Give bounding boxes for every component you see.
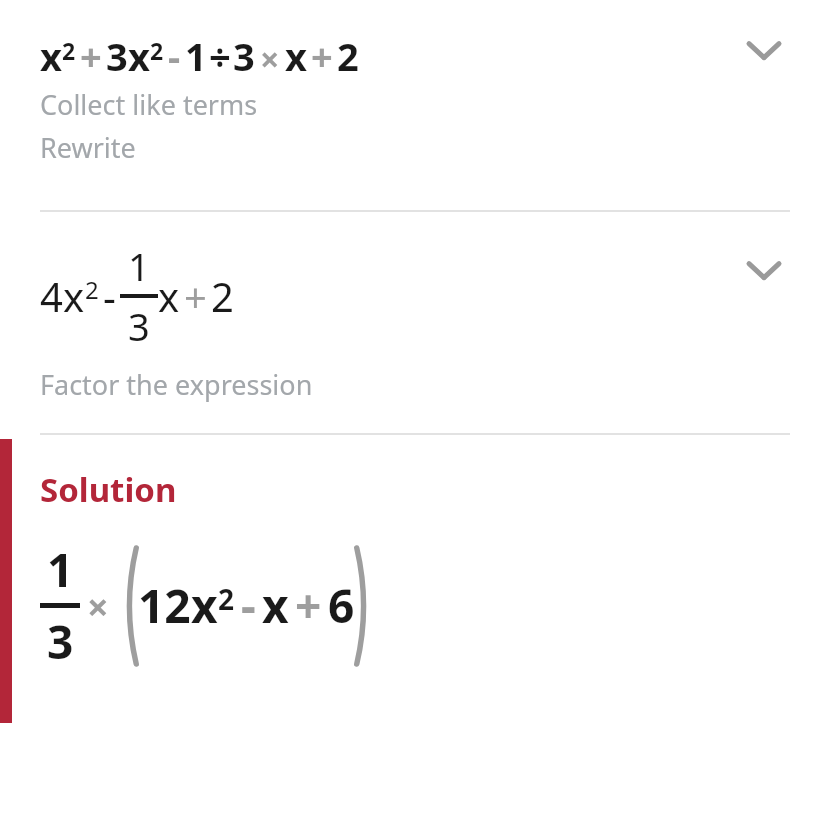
- staticText: x: [40, 30, 62, 82]
- staticText: Factor the expression: [40, 366, 313, 403]
- staticText: 4: [40, 269, 63, 323]
- staticText: 3: [106, 30, 128, 82]
- staticText: 2: [337, 30, 359, 82]
- staticText: -: [168, 30, 181, 82]
- staticText: x: [63, 269, 85, 323]
- staticText: +: [80, 30, 102, 82]
- button[interactable]: x: [0, 0, 828, 166]
- staticText: 1: [47, 538, 74, 601]
- staticText: 2: [85, 273, 99, 306]
- staticText: 1: [185, 30, 207, 82]
- staticText: 2: [218, 580, 235, 618]
- staticText: 3: [233, 30, 255, 82]
- button[interactable]: Expand: [736, 22, 792, 78]
- staticText: 3: [47, 610, 74, 673]
- staticText: 12: [138, 574, 191, 637]
- staticText: x: [285, 30, 307, 82]
- button[interactable]: Expand: [736, 242, 792, 298]
- staticText: ×: [87, 580, 109, 632]
- staticText: +: [295, 574, 322, 637]
- staticText: 2: [62, 35, 76, 66]
- staticText: x: [158, 269, 180, 323]
- staticText: +: [184, 269, 207, 323]
- staticText: x: [128, 30, 150, 82]
- staticText: ÷: [209, 30, 231, 82]
- staticText: 1: [128, 240, 150, 292]
- staticText: -: [103, 269, 116, 323]
- staticText: -: [241, 574, 256, 637]
- staticText: +: [311, 30, 333, 82]
- staticText: x: [262, 574, 289, 637]
- staticText: Solution: [40, 467, 177, 512]
- staticText: x: [191, 574, 218, 637]
- staticText: 3: [128, 300, 150, 352]
- staticText: Collect like terms: [40, 86, 258, 123]
- staticText: 2: [150, 35, 164, 66]
- staticText: Rewrite: [40, 129, 136, 166]
- staticText: 2: [211, 269, 234, 323]
- staticText: ×: [260, 36, 280, 82]
- staticText: 6: [328, 574, 355, 637]
- button[interactable]: 4: [0, 212, 828, 403]
